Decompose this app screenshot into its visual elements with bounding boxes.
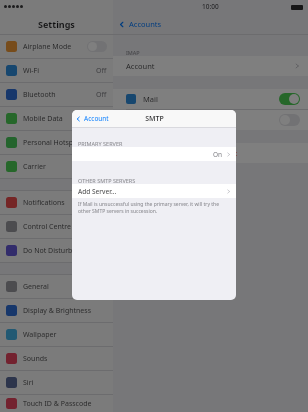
staticText: Control Centre — [23, 222, 72, 232]
button[interactable]: Carrier — [0, 155, 113, 178]
staticText: Airplane Mode — [23, 42, 72, 52]
staticText: Touch ID & Passcode — [23, 399, 92, 409]
button[interactable]: Airplane Mode — [0, 35, 113, 58]
staticText: Notes — [143, 115, 164, 125]
staticText: Display & Brightness — [23, 306, 92, 316]
staticText: Off — [96, 138, 107, 148]
button[interactable]: Toggle on — [279, 93, 300, 105]
staticText: Bluetooth — [23, 90, 56, 100]
staticText: Mail — [143, 94, 158, 104]
staticText: Account — [126, 61, 155, 71]
button[interactable]: Wallpaper — [0, 323, 113, 346]
staticText: 10:00 — [202, 2, 219, 11]
button[interactable]: Siri — [0, 371, 113, 394]
staticText: Mobile Data — [23, 114, 63, 124]
staticText: OTHER SMTP SERVERS — [78, 177, 136, 184]
button[interactable]: Add Server... — [72, 184, 236, 198]
staticText: Notifications — [23, 198, 65, 208]
staticText: On — [213, 150, 223, 159]
staticText: Add Server... — [78, 187, 117, 196]
staticText: Wi-Fi — [23, 66, 40, 76]
button[interactable]: Wi-Fi — [0, 59, 113, 82]
button[interactable]: Control Centre — [0, 215, 113, 238]
staticText: Off — [96, 90, 107, 100]
button[interactable]: Toggle off — [279, 114, 300, 126]
button[interactable]: General — [0, 275, 113, 298]
button[interactable]: Notifications — [0, 191, 113, 214]
button[interactable]: Do Not Disturb — [0, 239, 113, 262]
staticText: Carrier — [23, 162, 46, 172]
staticText: Settings — [38, 18, 75, 30]
staticText: Account — [84, 114, 109, 123]
button[interactable]: Personal Hotspot — [0, 131, 113, 154]
staticText: Wallpaper — [23, 330, 57, 340]
staticText: Do Not Disturb — [23, 246, 73, 256]
staticText: PRIMARY SERVER — [78, 140, 123, 147]
button[interactable]: Account — [113, 56, 308, 76]
staticText: IMAP — [126, 49, 140, 56]
staticText: Off — [96, 66, 107, 76]
button[interactable]: Touch ID & Passcode — [0, 395, 113, 412]
staticText: General — [23, 282, 49, 292]
button[interactable]: On — [72, 147, 236, 161]
button[interactable]: Sounds — [0, 347, 113, 370]
button[interactable]: Bluetooth — [0, 83, 113, 106]
staticText: Personal Hotspot — [23, 138, 80, 148]
button[interactable]: Account — [72, 112, 113, 125]
staticText: Delete Account — [184, 148, 238, 158]
button[interactable]: Display & Brightness — [0, 299, 113, 322]
staticText: SMTP — [145, 114, 164, 124]
staticText: Sounds — [23, 354, 48, 364]
button[interactable]: Mail — [113, 89, 308, 109]
button[interactable]: Toggle off — [87, 41, 107, 52]
button[interactable]: Accounts — [113, 14, 308, 34]
button[interactable]: Notes — [113, 110, 308, 130]
staticText: If Mail is unsuccessful using the primar… — [78, 201, 230, 215]
button[interactable]: Mobile Data — [0, 107, 113, 130]
button[interactable]: Delete Account — [113, 143, 308, 163]
staticText: Accounts — [129, 19, 162, 29]
staticText: Siri — [23, 378, 34, 388]
